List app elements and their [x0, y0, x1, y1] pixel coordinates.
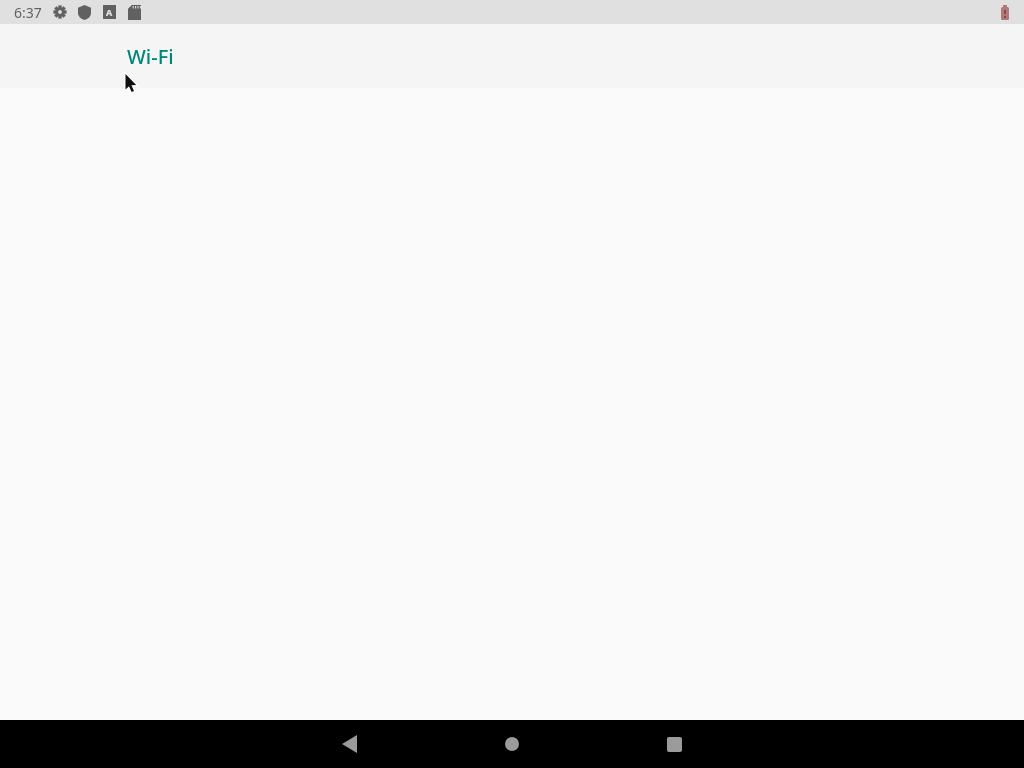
button[interactable]: [336, 731, 362, 757]
staticText: 6:37: [14, 3, 42, 22]
staticText: A: [106, 6, 113, 18]
button[interactable]: [499, 731, 525, 757]
button[interactable]: Wi-Fi: [127, 43, 174, 70]
button[interactable]: [661, 731, 687, 757]
